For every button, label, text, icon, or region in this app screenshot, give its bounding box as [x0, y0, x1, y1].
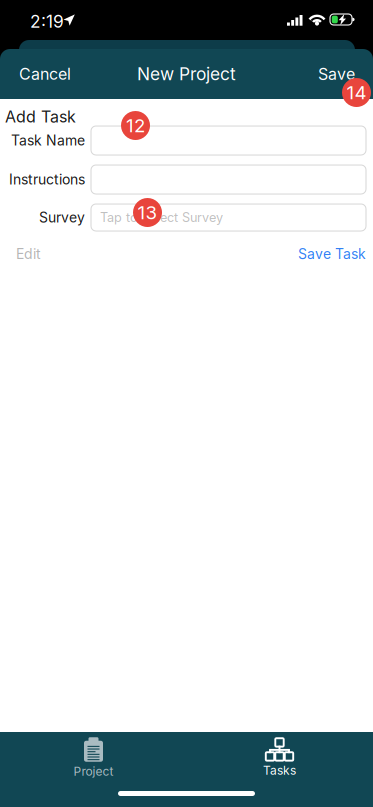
staticText: Survey: [39, 209, 85, 226]
button[interactable]: Save Task: [298, 244, 366, 264]
staticText: Tap to Select Survey: [100, 210, 223, 225]
staticText: Save: [318, 64, 355, 84]
staticText: Edit: [16, 245, 41, 262]
button[interactable]: Edit: [16, 244, 41, 264]
staticText: Instructions: [9, 171, 85, 188]
staticText: Cancel: [19, 64, 71, 84]
staticText: 13: [137, 201, 157, 224]
button[interactable]: Cancel: [19, 54, 99, 94]
staticText: 14: [346, 81, 366, 104]
staticText: New Project: [137, 63, 236, 84]
button[interactable]: Tasks: [186, 737, 372, 779]
staticText: 12: [126, 114, 145, 137]
staticText: Add Task: [5, 107, 76, 126]
button[interactable]: Project: [0, 737, 186, 779]
staticText: Tasks: [263, 763, 296, 778]
button[interactable]: Save: [275, 54, 355, 94]
staticText: Project: [73, 764, 113, 779]
staticText: Task Name: [11, 132, 85, 149]
staticText: Save Task: [298, 245, 366, 262]
staticText: 2:19: [30, 11, 64, 32]
